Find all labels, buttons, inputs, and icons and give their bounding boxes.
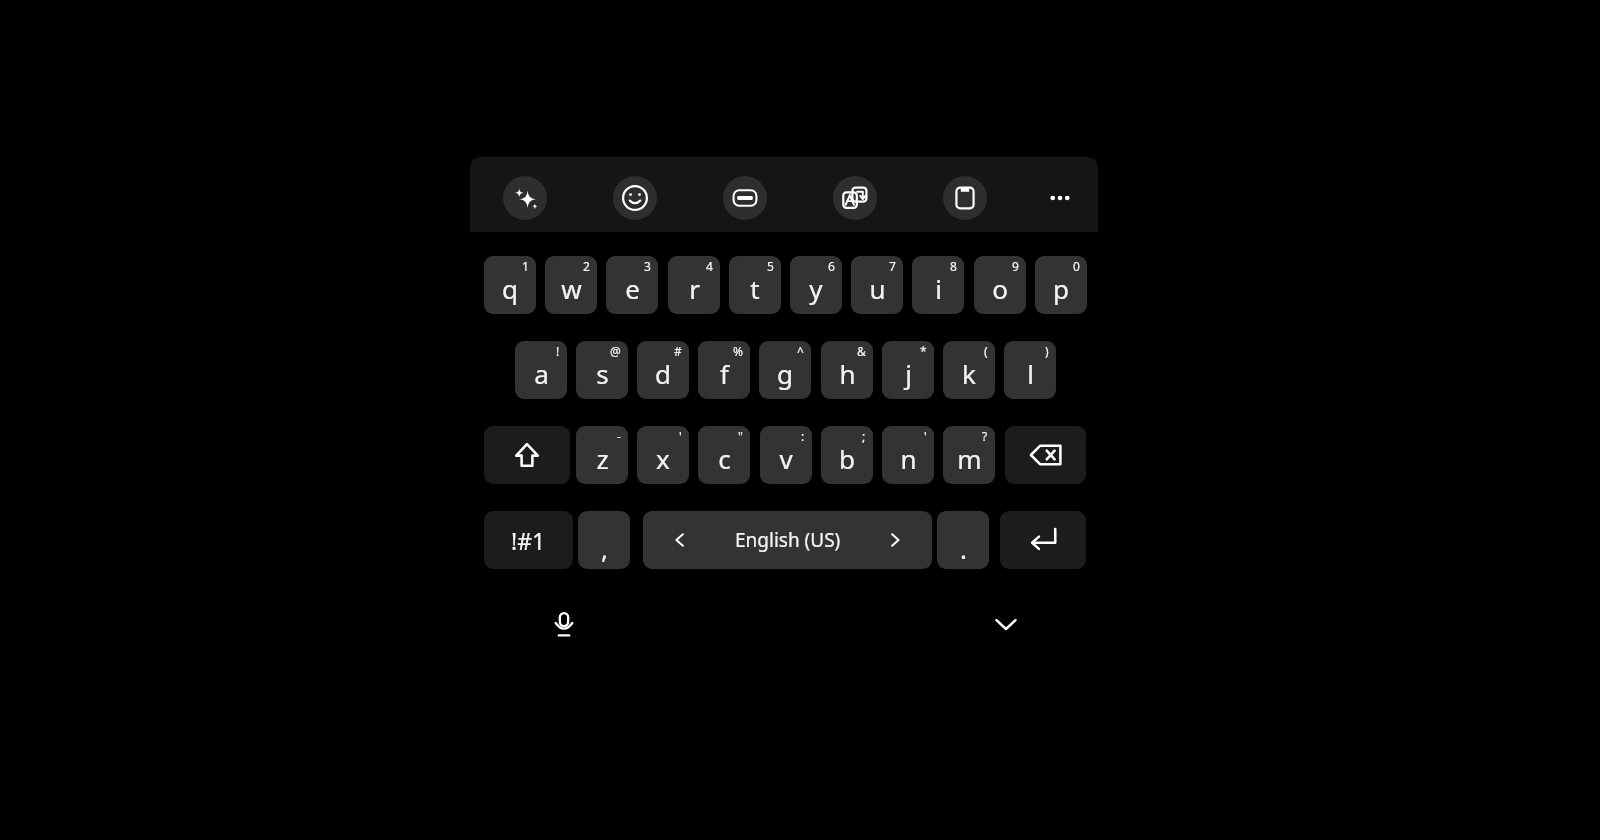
button[interactable]: r xyxy=(668,256,720,314)
staticText: t xyxy=(750,271,760,306)
button[interactable]: Backspace xyxy=(1005,426,1086,484)
staticText: o xyxy=(992,271,1008,306)
button[interactable]: . xyxy=(937,511,989,569)
staticText: k xyxy=(962,356,976,391)
staticText: u xyxy=(869,271,886,306)
staticText: ( xyxy=(984,343,988,359)
button[interactable]: x xyxy=(637,426,689,484)
staticText: 0 xyxy=(1073,258,1080,274)
button[interactable]: Enter xyxy=(1000,511,1086,569)
staticText: f xyxy=(720,356,729,391)
staticText: x xyxy=(656,441,670,476)
button[interactable]: t xyxy=(729,256,781,314)
staticText: g xyxy=(777,356,793,391)
button[interactable]: e xyxy=(606,256,658,314)
staticText: q xyxy=(502,271,518,306)
staticText: 4 xyxy=(706,258,713,274)
button[interactable]: Keyboard tool xyxy=(833,176,877,220)
staticText: English (US) xyxy=(735,527,841,553)
staticText: j xyxy=(905,356,912,391)
button[interactable]: Keyboard tool xyxy=(943,176,987,220)
staticText: l xyxy=(1027,356,1034,391)
staticText: 7 xyxy=(889,258,896,274)
staticText: ; xyxy=(862,428,866,444)
button[interactable]: u xyxy=(851,256,903,314)
staticText: 1 xyxy=(522,258,529,274)
staticText: ? xyxy=(982,428,988,444)
button[interactable]: k xyxy=(943,341,995,399)
button[interactable]: English (US) xyxy=(643,511,932,569)
staticText: 6 xyxy=(828,258,835,274)
staticText: ' xyxy=(679,428,682,444)
staticText: & xyxy=(857,343,866,359)
staticText: e xyxy=(625,271,640,306)
button[interactable]: Keyboard tool xyxy=(723,176,767,220)
staticText: , xyxy=(601,531,608,566)
button[interactable]: Shift xyxy=(484,426,570,484)
staticText: ! xyxy=(556,343,560,359)
staticText: : xyxy=(801,428,805,444)
staticText: 5 xyxy=(767,258,774,274)
button[interactable]: i xyxy=(912,256,964,314)
button[interactable]: p xyxy=(1035,256,1087,314)
button[interactable]: c xyxy=(698,426,750,484)
staticText: r xyxy=(689,271,700,306)
button[interactable]: o xyxy=(974,256,1026,314)
button[interactable]: s xyxy=(576,341,628,399)
button[interactable]: b xyxy=(821,426,873,484)
staticText: # xyxy=(674,343,682,359)
button[interactable]: n xyxy=(882,426,934,484)
staticText: . xyxy=(960,531,967,566)
staticText: p xyxy=(1053,271,1069,306)
staticText: ^ xyxy=(797,343,804,359)
staticText: ' xyxy=(924,428,927,444)
button[interactable]: q xyxy=(484,256,536,314)
staticText: s xyxy=(596,356,609,391)
staticText: - xyxy=(617,428,621,444)
button[interactable]: m xyxy=(943,426,995,484)
staticText: v xyxy=(779,441,793,476)
button[interactable]: y xyxy=(790,256,842,314)
staticText: 3 xyxy=(644,258,651,274)
staticText: y xyxy=(809,271,823,306)
button[interactable]: f xyxy=(698,341,750,399)
staticText: i xyxy=(935,271,942,306)
staticText: w xyxy=(561,271,582,306)
staticText: h xyxy=(839,356,856,391)
staticText: % xyxy=(733,343,743,359)
staticText: b xyxy=(839,441,855,476)
staticText: d xyxy=(655,356,671,391)
staticText: * xyxy=(920,343,927,359)
button[interactable]: z xyxy=(576,426,628,484)
staticText: c xyxy=(718,441,731,476)
button[interactable]: More options xyxy=(1038,176,1082,220)
staticText: !#1 xyxy=(511,525,546,556)
button[interactable]: Hide keyboard xyxy=(982,600,1030,648)
button[interactable]: h xyxy=(821,341,873,399)
staticText: " xyxy=(738,428,743,444)
staticText: 8 xyxy=(950,258,957,274)
button[interactable]: w xyxy=(545,256,597,314)
staticText: @ xyxy=(610,343,621,359)
button[interactable]: l xyxy=(1004,341,1056,399)
staticText: 2 xyxy=(583,258,590,274)
staticText: m xyxy=(957,441,982,476)
button[interactable]: g xyxy=(759,341,811,399)
button[interactable]: Keyboard tool xyxy=(503,176,547,220)
button[interactable]: Keyboard tool xyxy=(613,176,657,220)
button[interactable]: j xyxy=(882,341,934,399)
button[interactable]: v xyxy=(760,426,812,484)
staticText: 9 xyxy=(1012,258,1019,274)
staticText: z xyxy=(596,441,609,476)
staticText: n xyxy=(900,441,917,476)
button[interactable]: d xyxy=(637,341,689,399)
button[interactable]: , xyxy=(578,511,630,569)
button[interactable]: !#1 xyxy=(484,511,573,569)
staticText: a xyxy=(534,356,549,391)
button[interactable]: Voice input xyxy=(540,600,588,648)
button[interactable]: a xyxy=(515,341,567,399)
staticText: ) xyxy=(1045,343,1049,359)
